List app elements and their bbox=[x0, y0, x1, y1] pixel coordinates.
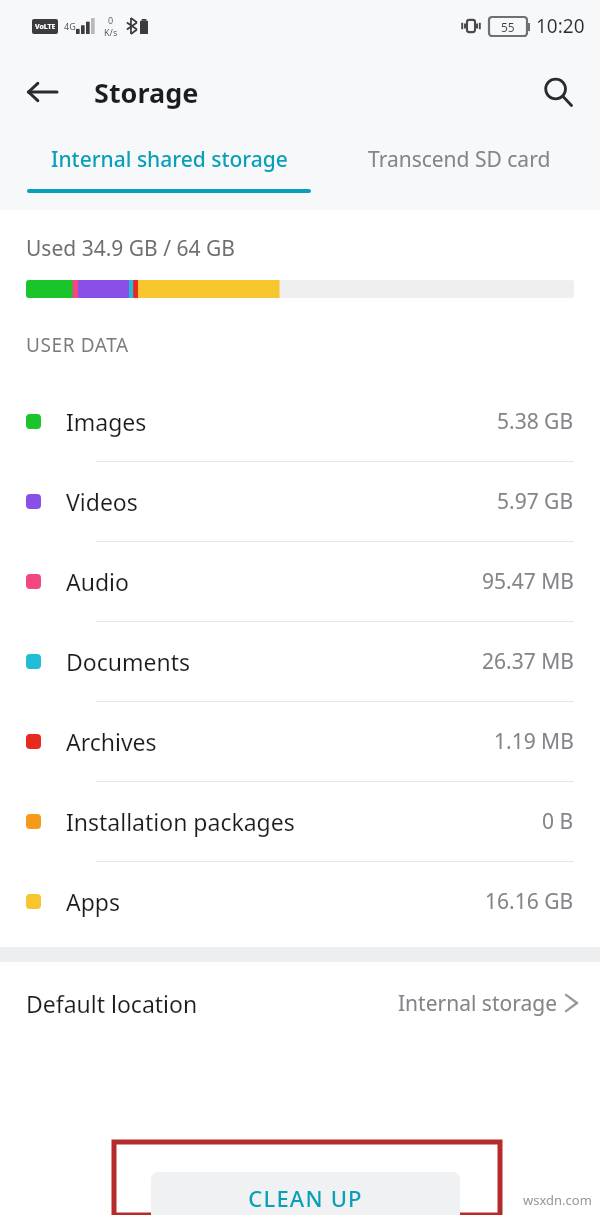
button[interactable]: Images bbox=[0, 382, 600, 461]
staticText: 5.38 GB bbox=[497, 407, 574, 436]
button[interactable]: Documents bbox=[0, 622, 600, 701]
button[interactable]: Default location bbox=[0, 962, 600, 1044]
staticText: 1.19 MB bbox=[494, 727, 574, 756]
staticText: 95.47 MB bbox=[482, 567, 574, 596]
staticText: Apps bbox=[66, 886, 121, 917]
staticText: Default location bbox=[26, 988, 198, 1019]
button[interactable]: Installation packages bbox=[0, 782, 600, 861]
button[interactable]: Videos bbox=[0, 462, 600, 541]
staticText: wsxdn.com bbox=[523, 1191, 592, 1209]
staticText: Audio bbox=[66, 566, 129, 597]
staticText: 26.37 MB bbox=[482, 647, 574, 676]
button[interactable]: Transcend SD card bbox=[338, 132, 600, 210]
staticText: 0 B bbox=[542, 807, 574, 836]
button[interactable]: Back bbox=[14, 64, 70, 120]
button[interactable]: Archives bbox=[0, 702, 600, 781]
staticText: 10:20 bbox=[536, 13, 585, 39]
staticText: Videos bbox=[66, 486, 138, 517]
button[interactable]: Internal shared storage bbox=[0, 132, 338, 210]
staticText: Transcend SD card bbox=[368, 145, 551, 174]
staticText: CLEAN UP bbox=[248, 1183, 363, 1213]
staticText: Images bbox=[66, 406, 147, 437]
staticText: K/s bbox=[104, 26, 118, 38]
staticText: Internal shared storage bbox=[51, 145, 288, 174]
staticText: Storage bbox=[94, 74, 199, 111]
button[interactable]: Search bbox=[530, 64, 586, 120]
staticText: Documents bbox=[66, 646, 190, 677]
staticText: Archives bbox=[66, 726, 157, 757]
staticText: USER DATA bbox=[26, 332, 129, 358]
staticText: Installation packages bbox=[66, 806, 295, 837]
staticText: Used 34.9 GB / 64 GB bbox=[26, 234, 235, 263]
staticText: Internal storage bbox=[398, 989, 557, 1018]
staticText: 0 bbox=[108, 14, 114, 26]
staticText: 55 bbox=[501, 19, 515, 35]
button[interactable]: Apps bbox=[0, 862, 600, 941]
button[interactable]: CLEAN UP bbox=[151, 1172, 460, 1215]
staticText: 4G bbox=[64, 20, 76, 32]
button[interactable]: Audio bbox=[0, 542, 600, 621]
staticText: 5.97 GB bbox=[497, 487, 574, 516]
staticText: 16.16 GB bbox=[485, 887, 574, 916]
staticText: VoLTE bbox=[35, 22, 56, 32]
